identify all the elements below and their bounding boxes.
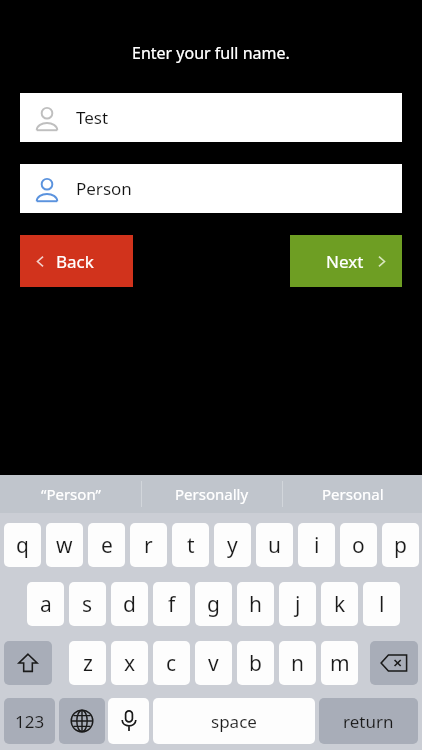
button[interactable]: space bbox=[153, 698, 315, 744]
staticText: z bbox=[83, 649, 93, 678]
button[interactable]: x bbox=[111, 641, 148, 685]
staticText: space bbox=[211, 710, 257, 733]
button[interactable]: Next bbox=[290, 235, 402, 287]
button[interactable]: m bbox=[321, 641, 358, 685]
staticText: x bbox=[124, 649, 136, 678]
staticText: return bbox=[343, 710, 394, 733]
staticText: c bbox=[166, 649, 177, 678]
staticText: o bbox=[352, 531, 365, 560]
staticText: 123 bbox=[15, 710, 45, 733]
button[interactable]: e bbox=[88, 523, 125, 567]
button[interactable]: Person bbox=[20, 164, 402, 213]
staticText: j bbox=[295, 590, 301, 619]
button[interactable]: p bbox=[382, 523, 419, 567]
staticText: g bbox=[207, 590, 220, 619]
button[interactable]: Personal bbox=[283, 475, 422, 513]
staticText: b bbox=[249, 649, 262, 678]
button[interactable]: b bbox=[237, 641, 274, 685]
button[interactable]: v bbox=[195, 641, 232, 685]
staticText: s bbox=[82, 590, 93, 619]
button[interactable]: y bbox=[214, 523, 251, 567]
button[interactable]: n bbox=[279, 641, 316, 685]
button[interactable]: j bbox=[279, 582, 316, 626]
button[interactable]: q bbox=[4, 523, 41, 567]
staticText: Enter your full name. bbox=[132, 42, 290, 64]
button[interactable]: t bbox=[172, 523, 209, 567]
staticText: f bbox=[168, 590, 176, 619]
button[interactable]: Personally bbox=[142, 475, 282, 513]
button[interactable]: “Person” bbox=[0, 475, 141, 513]
staticText: a bbox=[40, 590, 52, 619]
staticText: Next bbox=[326, 250, 364, 273]
staticText: Personally bbox=[175, 484, 249, 504]
staticText: k bbox=[334, 590, 346, 619]
button[interactable]: r bbox=[130, 523, 167, 567]
button[interactable]: Next keyboard bbox=[59, 698, 105, 744]
button[interactable]: l bbox=[363, 582, 400, 626]
staticText: Test bbox=[76, 106, 109, 129]
staticText: Personal bbox=[322, 484, 384, 504]
button[interactable]: i bbox=[298, 523, 335, 567]
staticText: Back bbox=[56, 250, 94, 273]
staticText: i bbox=[314, 531, 320, 560]
staticText: v bbox=[208, 649, 219, 678]
staticText: Person bbox=[76, 177, 132, 200]
staticText: n bbox=[291, 649, 304, 678]
button[interactable]: z bbox=[69, 641, 106, 685]
staticText: u bbox=[268, 531, 281, 560]
button[interactable]: Dictation bbox=[108, 698, 149, 744]
staticText: q bbox=[16, 531, 29, 560]
button[interactable]: h bbox=[237, 582, 274, 626]
button[interactable]: o bbox=[340, 523, 377, 567]
staticText: e bbox=[101, 531, 113, 560]
staticText: “Person” bbox=[41, 484, 101, 504]
staticText: w bbox=[56, 531, 73, 560]
button[interactable]: Shift bbox=[4, 641, 52, 685]
staticText: y bbox=[227, 531, 238, 560]
staticText: d bbox=[123, 590, 136, 619]
button[interactable]: d bbox=[111, 582, 148, 626]
button[interactable]: Back bbox=[20, 235, 133, 287]
staticText: h bbox=[249, 590, 262, 619]
button[interactable]: g bbox=[195, 582, 232, 626]
staticText: r bbox=[144, 531, 153, 560]
button[interactable]: c bbox=[153, 641, 190, 685]
staticText: l bbox=[379, 590, 385, 619]
button[interactable]: k bbox=[321, 582, 358, 626]
button[interactable]: Test bbox=[20, 93, 402, 142]
staticText: t bbox=[187, 531, 195, 560]
button[interactable]: a bbox=[27, 582, 64, 626]
button[interactable]: Backspace bbox=[370, 641, 418, 685]
button[interactable]: s bbox=[69, 582, 106, 626]
button[interactable]: 123 bbox=[4, 698, 55, 744]
staticText: m bbox=[330, 649, 350, 678]
button[interactable]: w bbox=[46, 523, 83, 567]
button[interactable]: f bbox=[153, 582, 190, 626]
button[interactable]: return bbox=[319, 698, 418, 744]
staticText: p bbox=[394, 531, 407, 560]
button[interactable]: u bbox=[256, 523, 293, 567]
